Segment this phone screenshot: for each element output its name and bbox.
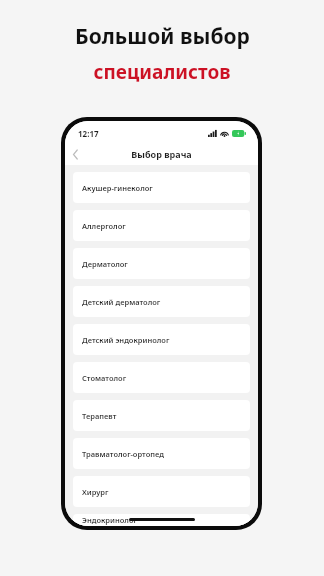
staticText: Акушер-гинеколог — [82, 183, 153, 193]
button[interactable]: Эндокринолог — [73, 514, 250, 526]
staticText: Стоматолог — [82, 373, 127, 383]
button[interactable]: Стоматолог — [73, 362, 250, 393]
staticText: Детский дерматолог — [82, 297, 161, 307]
staticText: Терапевт — [82, 411, 117, 421]
button[interactable]: Детский эндокринолог — [73, 324, 250, 355]
staticText: Выбор врача — [131, 148, 192, 160]
button[interactable]: Детский дерматолог — [73, 286, 250, 317]
staticText: Дерматолог — [82, 259, 128, 269]
staticText: Эндокринолог — [82, 515, 137, 525]
staticText: Большой выбор — [75, 22, 250, 51]
staticText: Аллерголог — [82, 221, 126, 231]
staticText: Травматолог-ортопед — [82, 449, 164, 459]
button[interactable]: Травматолог-ортопед — [73, 438, 250, 469]
button[interactable]: Дерматолог — [73, 248, 250, 279]
staticText: 12:17 — [78, 128, 99, 139]
button[interactable]: Назад — [65, 144, 85, 164]
staticText: Хирург — [82, 487, 109, 497]
staticText: специалистов — [93, 59, 231, 85]
button[interactable]: Терапевт — [73, 400, 250, 431]
staticText: Детский эндокринолог — [82, 335, 170, 345]
button[interactable]: Хирург — [73, 476, 250, 507]
button[interactable]: Акушер-гинеколог — [73, 172, 250, 203]
button[interactable]: Аллерголог — [73, 210, 250, 241]
